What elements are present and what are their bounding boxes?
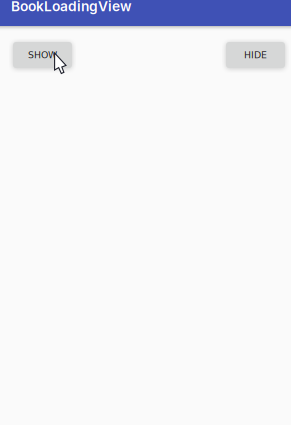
staticText: SHOW xyxy=(28,50,57,60)
staticText: BookLoadingView xyxy=(11,0,132,15)
staticText: HIDE xyxy=(244,50,267,60)
button[interactable]: HIDE xyxy=(226,42,285,68)
button[interactable]: SHOW xyxy=(13,42,72,68)
